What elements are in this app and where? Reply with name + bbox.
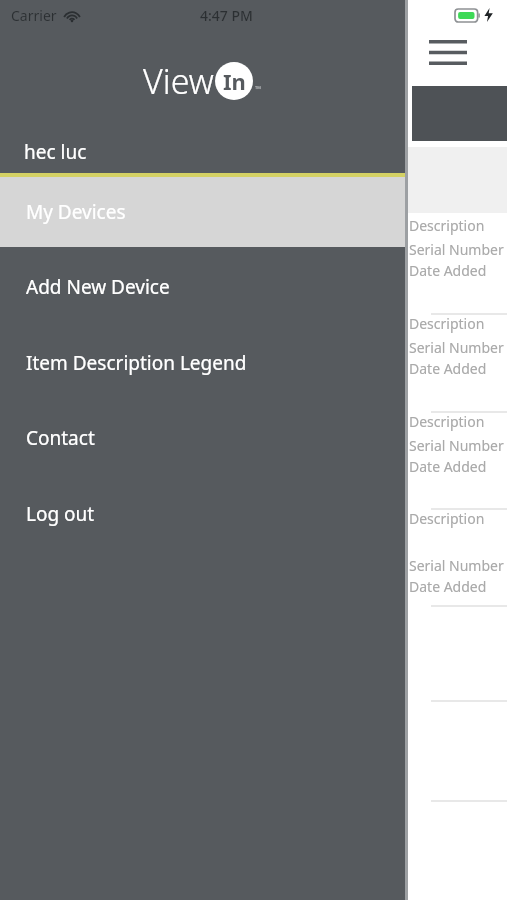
staticText: My Devices <box>26 199 126 225</box>
staticText: Date Added <box>409 577 487 596</box>
staticText: Description <box>409 216 485 235</box>
staticText: Description <box>409 509 485 528</box>
staticText: 4:47 PM <box>200 6 253 25</box>
staticText: Carrier <box>11 6 57 25</box>
staticText: View <box>143 58 214 104</box>
staticText: Description <box>409 314 485 333</box>
staticText: Serial Number <box>409 240 504 259</box>
staticText: Add New Device <box>26 274 170 300</box>
staticText: Date Added <box>409 457 487 476</box>
staticText: Log out <box>26 501 95 527</box>
staticText: Date Added <box>409 261 487 280</box>
button[interactable]: Open navigation menu <box>424 36 472 68</box>
button[interactable]: hec luc <box>0 130 405 173</box>
button[interactable]: Contact <box>0 416 405 460</box>
button[interactable]: Description <box>409 216 507 280</box>
staticText: Date Added <box>409 359 487 378</box>
staticText: In <box>223 66 246 96</box>
button[interactable]: Description <box>409 509 507 596</box>
staticText: Serial Number <box>409 436 504 455</box>
staticText: Item Description Legend <box>26 350 247 376</box>
button[interactable]: Description <box>409 314 507 378</box>
staticText: hec luc <box>24 139 87 165</box>
staticText: Contact <box>26 425 95 451</box>
staticText: Serial Number <box>409 556 504 575</box>
button[interactable]: Add New Device <box>0 265 405 309</box>
button[interactable]: Item Description Legend <box>0 341 405 385</box>
staticText: Description <box>409 412 485 431</box>
staticText: ™ <box>255 83 262 94</box>
button[interactable]: Log out <box>0 492 405 536</box>
button[interactable]: My Devices <box>0 177 405 247</box>
button[interactable]: Description <box>409 412 507 476</box>
staticText: Serial Number <box>409 338 504 357</box>
